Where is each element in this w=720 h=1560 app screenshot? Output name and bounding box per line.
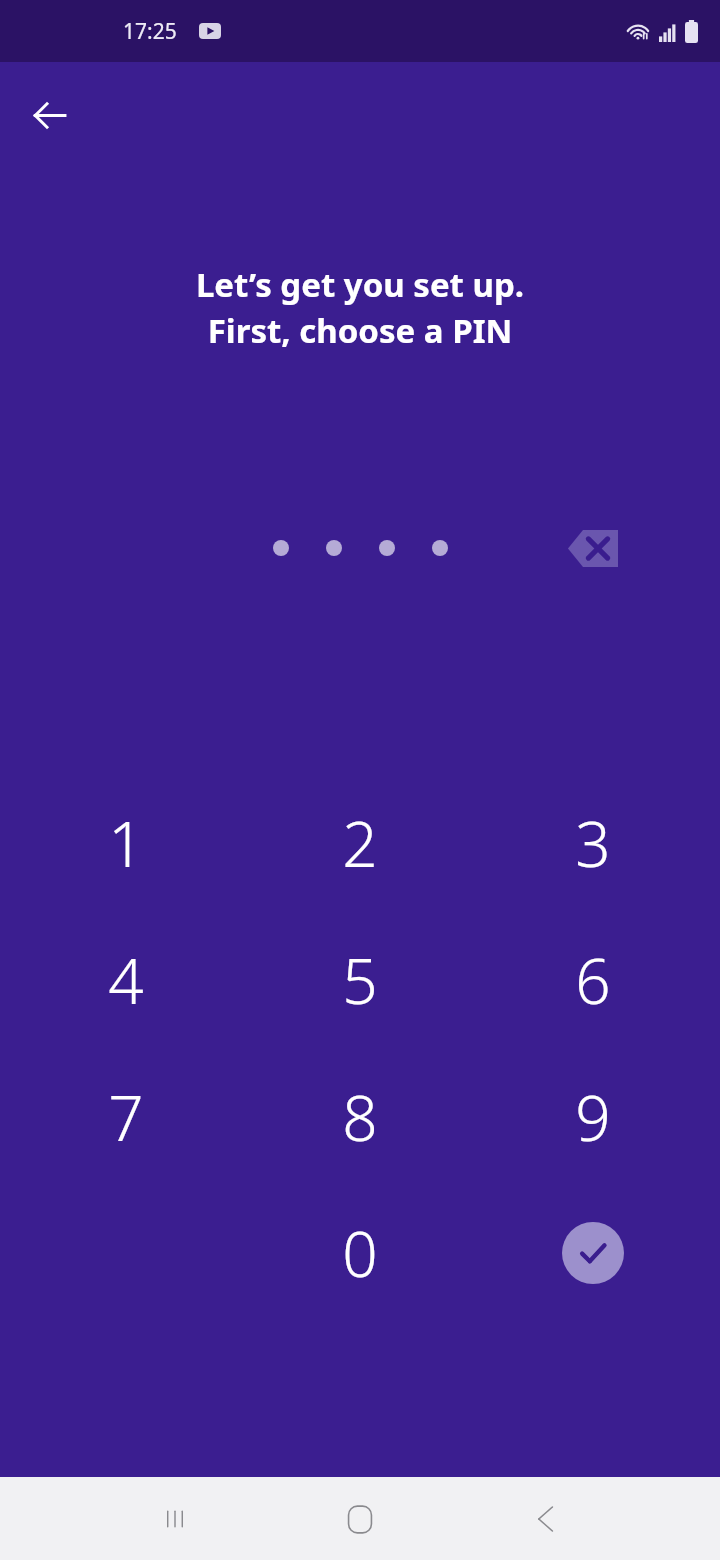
staticText: 0 — [342, 1211, 378, 1295]
button[interactable]: 8 — [302, 1059, 418, 1175]
staticText: 1 — [108, 801, 144, 885]
button[interactable]: Home — [320, 1479, 400, 1559]
button[interactable]: Back — [14, 80, 84, 150]
staticText: 8 — [342, 1075, 378, 1159]
staticText: 2 — [342, 801, 378, 885]
button[interactable]: Backspace — [558, 520, 628, 576]
staticText: 17:25 — [123, 17, 177, 46]
button[interactable]: 4 — [68, 922, 184, 1038]
button[interactable]: 3 — [535, 785, 651, 901]
staticText: 5 — [342, 938, 378, 1022]
button[interactable]: Recent apps — [135, 1479, 215, 1559]
staticText: 4 — [108, 938, 144, 1022]
staticText: 7 — [108, 1075, 144, 1159]
button[interactable]: 5 — [302, 922, 418, 1038]
button[interactable]: 9 — [535, 1059, 651, 1175]
button[interactable]: Confirm PIN — [549, 1209, 637, 1297]
button[interactable]: 6 — [535, 922, 651, 1038]
button[interactable]: 2 — [302, 785, 418, 901]
button[interactable]: 7 — [68, 1059, 184, 1175]
staticText: 3 — [575, 801, 611, 885]
staticText: 6 — [575, 938, 611, 1022]
button[interactable]: 1 — [68, 785, 184, 901]
button[interactable]: Back — [506, 1479, 586, 1559]
staticText: 9 — [575, 1075, 611, 1159]
button[interactable]: 0 — [302, 1195, 418, 1311]
staticText: Let’s get you set up. First, choose a PI… — [24, 262, 696, 353]
